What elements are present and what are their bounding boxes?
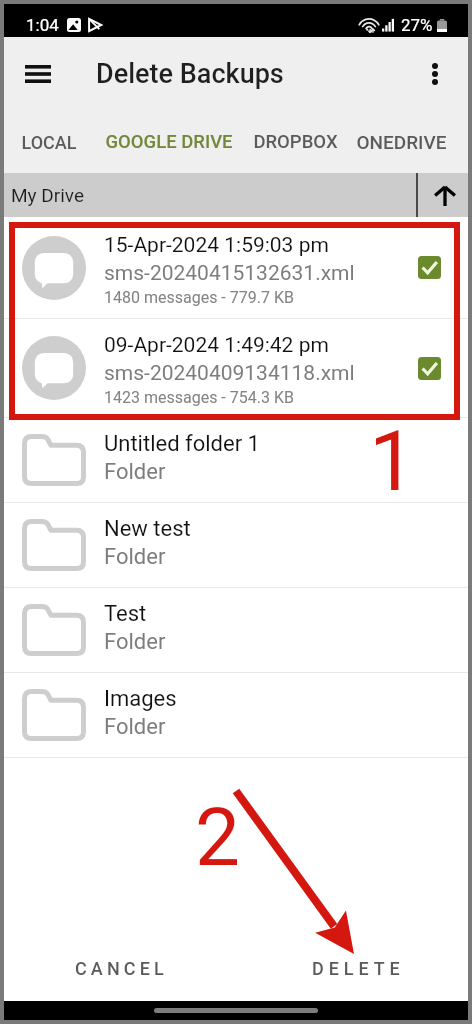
- staticText: My Drive: [11, 184, 84, 206]
- staticText: CANCEL: [75, 958, 168, 979]
- button[interactable]: ONEDRIVE: [347, 111, 456, 173]
- staticText: sms-20240409134118.xml: [104, 361, 355, 386]
- staticText: 2: [195, 791, 240, 885]
- staticText: 1423 messages - 754.3 KB: [104, 388, 294, 407]
- button[interactable]: Go up one folder: [422, 173, 468, 217]
- staticText: Delete Backups: [96, 58, 284, 90]
- staticText: New test: [104, 516, 191, 542]
- staticText: Untitled folder 1: [104, 431, 260, 457]
- staticText: Folder: [104, 544, 166, 570]
- staticText: GOOGLE DRIVE: [105, 131, 233, 153]
- button[interactable]: LOCAL: [4, 111, 94, 173]
- button[interactable]: CANCEL: [61, 948, 182, 989]
- staticText: Folder: [104, 714, 166, 740]
- staticText: 1:04: [26, 15, 59, 35]
- staticText: DELETE: [312, 958, 405, 979]
- button[interactable]: 15-Apr-2024 1:59:03 pm: [4, 217, 468, 318]
- button[interactable]: Images: [4, 673, 468, 757]
- staticText: 09-Apr-2024 1:49:42 pm: [104, 333, 329, 358]
- button[interactable]: Open navigation drawer: [10, 46, 66, 102]
- staticText: ONEDRIVE: [356, 131, 447, 153]
- button[interactable]: GOOGLE DRIVE: [94, 111, 243, 173]
- button[interactable]: Selected backup: [418, 357, 441, 380]
- staticText: Test: [104, 601, 147, 627]
- staticText: 27%: [401, 15, 433, 35]
- staticText: LOCAL: [21, 132, 77, 153]
- staticText: 1: [369, 413, 416, 510]
- button[interactable]: Selected backup: [418, 256, 441, 279]
- button[interactable]: DROPBOX: [243, 111, 347, 173]
- button[interactable]: Test: [4, 588, 468, 672]
- staticText: 15-Apr-2024 1:59:03 pm: [104, 233, 329, 258]
- staticText: Folder: [104, 629, 166, 655]
- staticText: DROPBOX: [253, 131, 338, 153]
- staticText: Folder: [104, 459, 166, 485]
- button[interactable]: New test: [4, 503, 468, 587]
- staticText: Images: [104, 686, 177, 712]
- button[interactable]: More options: [407, 46, 463, 102]
- button[interactable]: 09-Apr-2024 1:49:42 pm: [4, 319, 468, 417]
- staticText: 1480 messages - 779.7 KB: [104, 288, 294, 307]
- staticText: sms-20240415132631.xml: [104, 261, 355, 286]
- button[interactable]: DELETE: [298, 948, 419, 989]
- button[interactable]: Untitled folder 1: [4, 418, 468, 502]
